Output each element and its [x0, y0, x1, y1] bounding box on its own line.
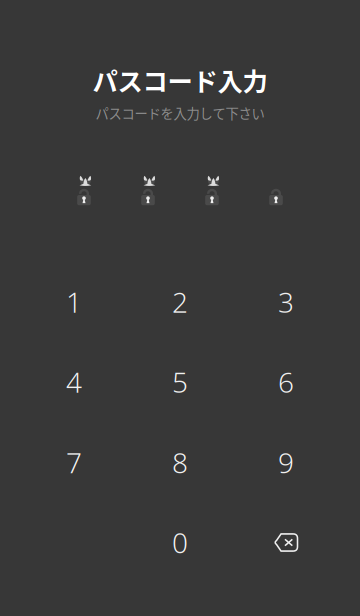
- staticText: 1: [66, 283, 82, 321]
- staticText: 6: [278, 363, 294, 401]
- staticText: 0: [172, 524, 188, 561]
- button[interactable]: 6: [246, 346, 326, 418]
- staticText: 5: [172, 363, 188, 401]
- staticText: パスコード入力: [92, 62, 267, 98]
- staticText: 4: [66, 363, 82, 401]
- staticText: 2: [172, 283, 188, 321]
- button[interactable]: 8: [140, 426, 220, 498]
- button[interactable]: 2: [140, 266, 220, 338]
- staticText: パスコードを入力して下さい: [95, 103, 264, 123]
- button[interactable]: 0: [140, 506, 220, 578]
- staticText: 7: [66, 444, 82, 481]
- button[interactable]: 9: [246, 426, 326, 498]
- button[interactable]: 1: [34, 266, 114, 338]
- button[interactable]: 5: [140, 346, 220, 418]
- button[interactable]: Delete: [246, 506, 326, 578]
- button[interactable]: 4: [34, 346, 114, 418]
- staticText: 3: [278, 283, 294, 321]
- button[interactable]: 3: [246, 266, 326, 338]
- staticText: 8: [172, 444, 188, 481]
- staticText: 9: [278, 444, 294, 481]
- button[interactable]: 7: [34, 426, 114, 498]
